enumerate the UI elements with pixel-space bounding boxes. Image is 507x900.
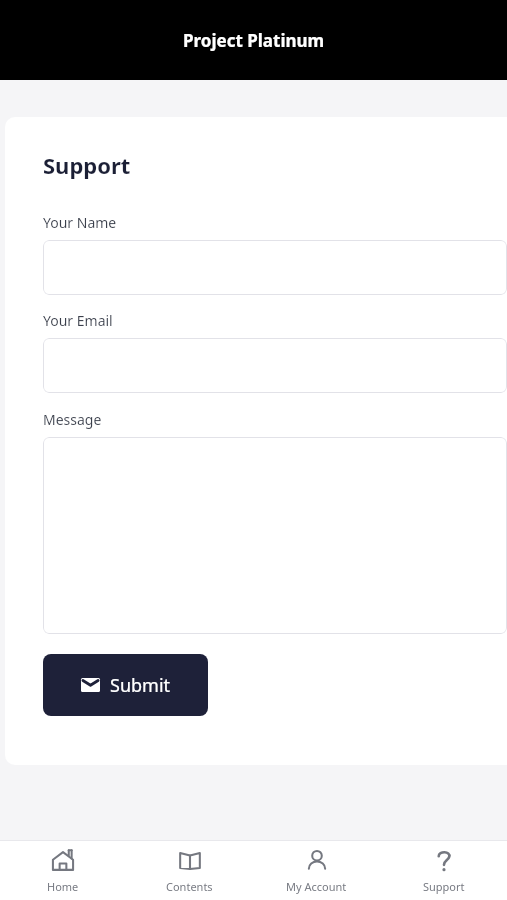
button[interactable] <box>43 338 507 393</box>
button[interactable] <box>43 240 507 295</box>
staticText: Your Email <box>43 311 113 330</box>
button[interactable]: Submit <box>43 654 208 716</box>
staticText: Support <box>423 879 465 894</box>
button[interactable]: Support <box>380 841 507 900</box>
button[interactable]: Home <box>0 841 126 900</box>
staticText: Contents <box>166 879 213 894</box>
button[interactable]: Contents <box>126 841 253 900</box>
staticText: Message <box>43 410 102 429</box>
staticText: Support <box>43 150 131 180</box>
staticText: My Account <box>286 879 347 894</box>
button[interactable]: My Account <box>253 841 380 900</box>
staticText: Your Name <box>43 213 117 232</box>
staticText: Project Platinum <box>183 29 325 52</box>
staticText: Submit <box>110 673 171 698</box>
button[interactable] <box>43 437 507 634</box>
staticText: Home <box>47 879 79 894</box>
